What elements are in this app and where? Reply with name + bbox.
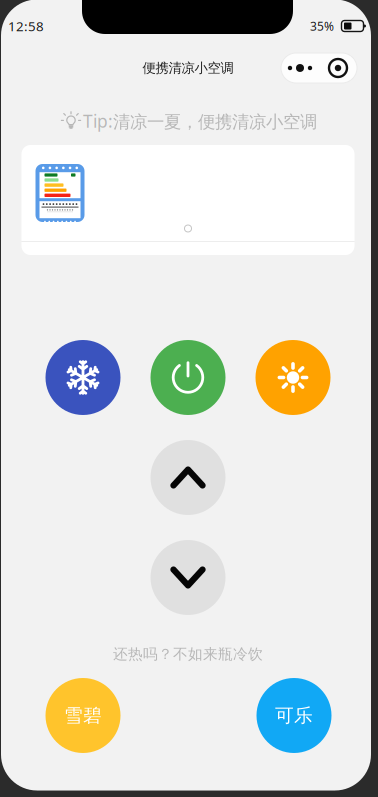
button[interactable]: Temperature down [150, 540, 225, 615]
button[interactable]: Power [150, 340, 225, 415]
staticText: 还热吗？不如来瓶冷饮 [113, 645, 263, 663]
button[interactable]: Menu [281, 53, 357, 83]
staticText: 雪碧 [64, 704, 102, 727]
staticText: 12:58 [8, 17, 44, 35]
button[interactable]: Heat mode [255, 340, 330, 415]
button[interactable]: 可乐 [256, 678, 331, 753]
button[interactable]: Cool mode [45, 340, 120, 415]
staticText: Tip:清凉一夏，便携清凉小空调 [83, 109, 317, 132]
staticText: 便携清凉小空调 [142, 60, 233, 76]
staticText: 可乐 [275, 704, 313, 727]
button[interactable]: Temperature up [150, 440, 225, 515]
button[interactable]: 雪碧 [45, 678, 120, 753]
staticText: 35% [310, 18, 334, 34]
